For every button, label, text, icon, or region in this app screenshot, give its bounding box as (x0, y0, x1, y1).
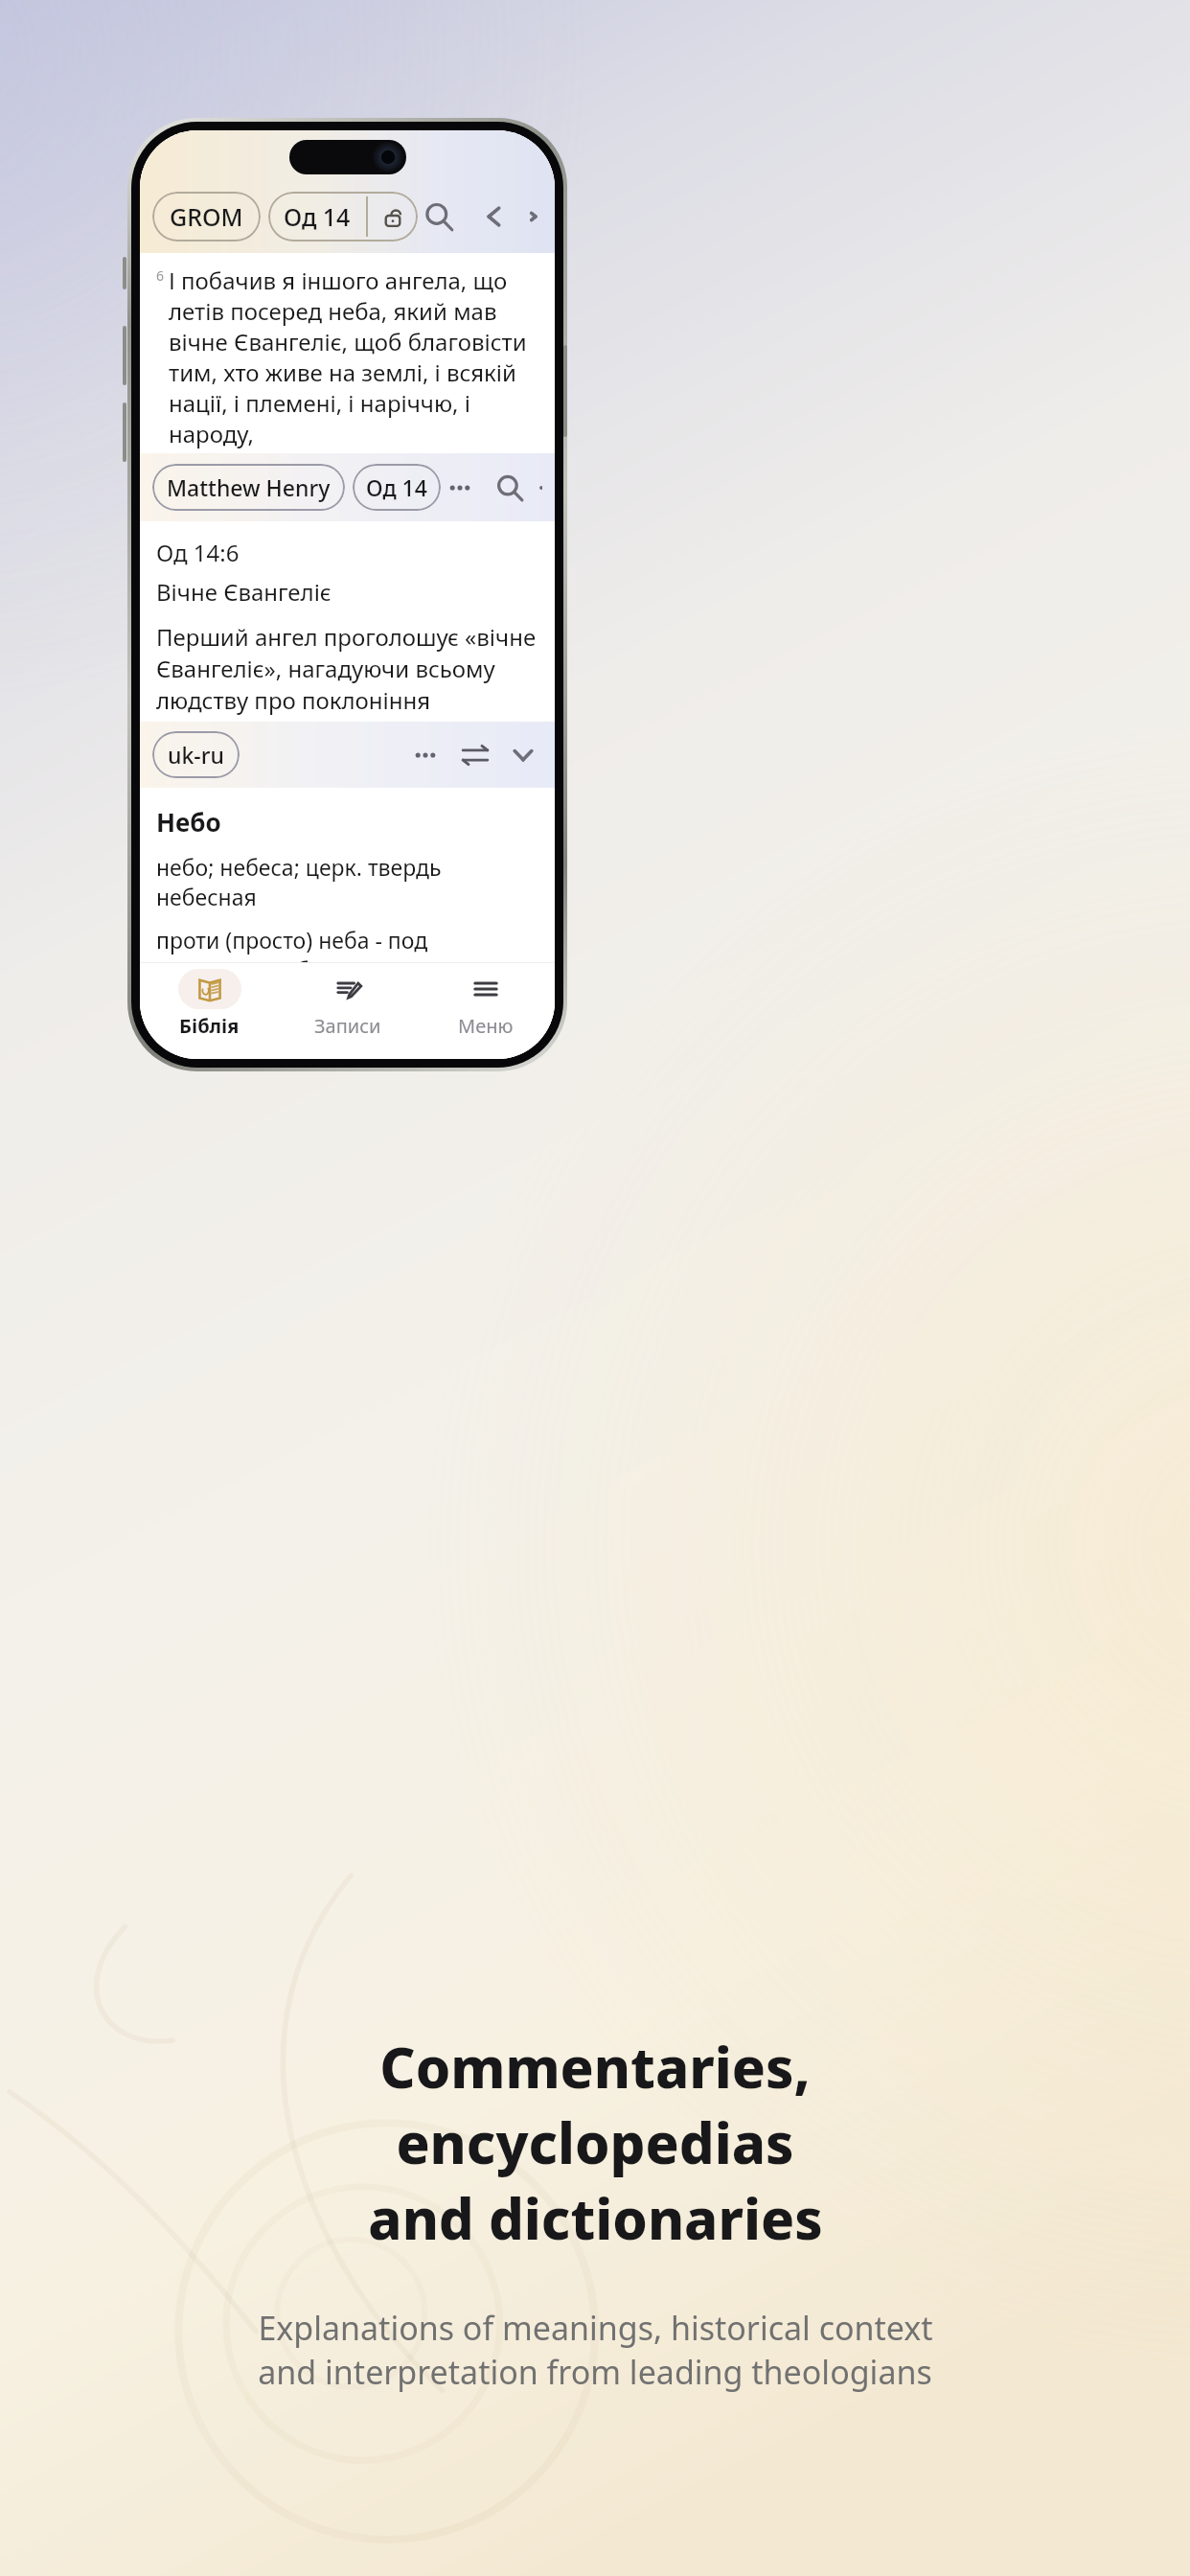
button[interactable]: Collapse (504, 736, 542, 774)
staticText: проти (просто) неба - под открытым небом (156, 925, 540, 962)
button[interactable]: Swap languages (456, 736, 494, 774)
staticText: небо; небеса; церк. твердь небесная (156, 852, 540, 911)
button[interactable]: uk-ru (152, 731, 240, 778)
staticText: Од 14:6 (156, 537, 240, 568)
button[interactable]: Collapse (538, 469, 542, 507)
button[interactable]: Search (491, 469, 529, 507)
staticText: Біблія (179, 1013, 240, 1039)
button[interactable]: Next (523, 196, 544, 237)
staticText: Commentaries, (379, 2029, 811, 2104)
button[interactable]: Од 14:6 (140, 521, 555, 722)
staticText: encyclopedias (396, 2104, 794, 2180)
button[interactable]: Unlock (368, 197, 418, 236)
staticText: Меню (458, 1013, 514, 1039)
staticText: GROM (170, 200, 243, 233)
staticText: Explanations of meanings, historical con… (258, 2306, 933, 2350)
staticText: and interpretation from leading theologi… (258, 2350, 932, 2394)
staticText: uk-ru (168, 740, 224, 770)
button[interactable]: GROM (152, 192, 261, 241)
staticText: Од 14 (284, 200, 351, 233)
staticText: Записи (314, 1013, 381, 1039)
button[interactable]: Matthew Henry (152, 464, 345, 511)
button[interactable]: Меню (417, 963, 555, 1046)
staticText: Од 14 (366, 472, 427, 502)
button[interactable]: Записи (279, 963, 417, 1046)
staticText: Matthew Henry (167, 472, 331, 502)
button[interactable]: More options (406, 736, 445, 774)
button[interactable]: Search (418, 195, 460, 238)
button[interactable]: Од 14 (268, 192, 366, 241)
button[interactable]: More options (441, 469, 479, 507)
button[interactable]: 6 (140, 253, 555, 453)
staticText: Вічне Євангеліє (156, 576, 332, 608)
staticText: 6 (156, 266, 165, 285)
staticText: and dictionaries (368, 2180, 823, 2256)
staticText: І побачив я іншого ангела, що летів посе… (169, 264, 540, 449)
staticText: Небо (156, 805, 221, 839)
button[interactable]: Од 14 (353, 464, 441, 511)
staticText: Перший ангел проголошує «вічне Євангеліє… (156, 621, 540, 722)
button[interactable]: Біблія (140, 963, 279, 1046)
button[interactable]: Previous (473, 196, 514, 237)
